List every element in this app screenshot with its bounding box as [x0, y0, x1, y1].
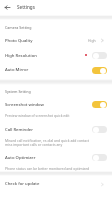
staticText: Auto Mirror	[5, 67, 29, 73]
staticText: System Setting	[5, 89, 31, 94]
staticText: Photo Quality	[5, 38, 33, 44]
staticText: Missed call notification, re-dial and qu…	[5, 138, 90, 147]
staticText: Camera Setting	[5, 25, 32, 30]
staticText: High Resolution	[5, 53, 37, 59]
staticText: Call Reminder	[5, 127, 33, 133]
staticText: Check for update	[5, 181, 40, 187]
staticText: Preview window of screenshot quick edit	[5, 113, 70, 118]
button[interactable]: Turn on	[92, 52, 107, 59]
button[interactable]: Call Reminder	[0, 121, 112, 149]
staticText: Phone status can be better monitored and…	[5, 166, 90, 171]
button[interactable]: High Resolution	[0, 47, 112, 62]
button[interactable]: Turn on	[92, 126, 107, 133]
button[interactable]: Turn off	[92, 101, 107, 108]
button[interactable]: Turn on	[92, 154, 107, 161]
staticText: Auto Optimizer	[5, 155, 36, 161]
staticText: Settings	[17, 4, 35, 10]
staticText: High	[88, 38, 96, 43]
button[interactable]: Photo Quality	[0, 32, 112, 47]
button[interactable]: Auto Mirror	[0, 62, 112, 77]
button[interactable]: Auto Optimizer	[0, 150, 112, 172]
button[interactable]: Screenshot window	[0, 96, 112, 119]
staticText: Screenshot window	[5, 102, 44, 108]
button[interactable]: Back	[2, 2, 13, 13]
button[interactable]: Turn off	[92, 67, 107, 74]
button[interactable]: Check for update	[0, 176, 112, 194]
